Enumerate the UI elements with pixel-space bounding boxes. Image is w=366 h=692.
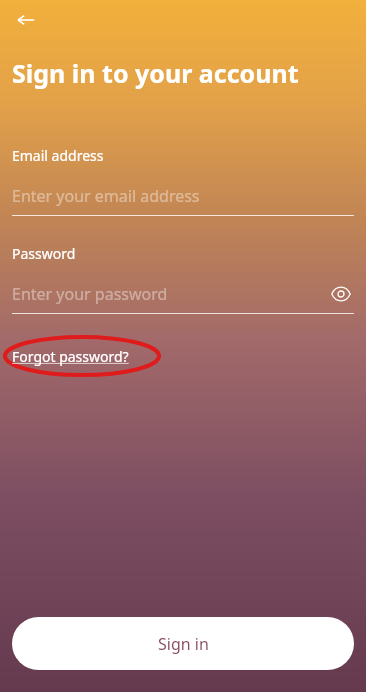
staticText: Sign in to your account (12, 56, 299, 90)
staticText: Enter your email address (12, 185, 354, 207)
staticText: Sign in (158, 633, 209, 655)
button[interactable]: Forgot password? (12, 347, 129, 366)
button[interactable]: Enter your password (12, 281, 354, 307)
staticText: Email address (12, 146, 104, 165)
button[interactable]: Show password (328, 281, 354, 307)
button[interactable]: Sign in (12, 617, 354, 670)
button[interactable]: Back (6, 0, 46, 40)
staticText: Enter your password (12, 283, 328, 305)
staticText: Forgot password? (12, 347, 129, 366)
button[interactable]: Enter your email address (12, 183, 354, 209)
staticText: Password (12, 244, 76, 263)
